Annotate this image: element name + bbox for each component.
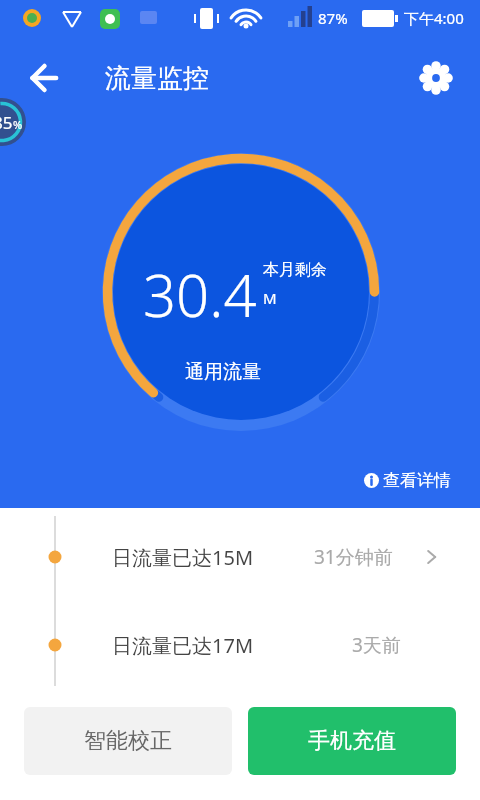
staticText: M xyxy=(263,288,277,308)
button[interactable]: Back xyxy=(16,50,72,106)
button[interactable]: Settings xyxy=(408,50,464,106)
staticText: 查看详情 xyxy=(383,470,451,491)
staticText: % xyxy=(13,117,23,132)
button[interactable]: 日流量已达15M xyxy=(0,528,480,586)
staticText: 通用流量 xyxy=(185,360,261,384)
button[interactable]: 智能校正 xyxy=(24,707,232,775)
button[interactable]: 手机充值 xyxy=(248,707,456,775)
staticText: 下午4:00 xyxy=(404,8,464,28)
staticText: 手机充值 xyxy=(308,727,396,755)
staticText: 日流量已达17M xyxy=(112,632,254,659)
button[interactable]: Battery 85 percent xyxy=(0,98,26,146)
staticText: 85 xyxy=(0,111,13,134)
staticText: 30.4 xyxy=(143,255,257,334)
staticText: 日流量已达15M xyxy=(112,544,254,571)
staticText: 本月剩余 xyxy=(263,260,327,280)
staticText: 流量监控 xyxy=(105,62,209,95)
staticText: 3天前 xyxy=(352,632,401,658)
button[interactable]: 查看详情 xyxy=(364,470,451,491)
staticText: 智能校正 xyxy=(84,727,172,755)
button[interactable]: 日流量已达17M xyxy=(0,616,480,674)
staticText: 31分钟前 xyxy=(314,544,393,570)
staticText: 87% xyxy=(318,8,348,28)
